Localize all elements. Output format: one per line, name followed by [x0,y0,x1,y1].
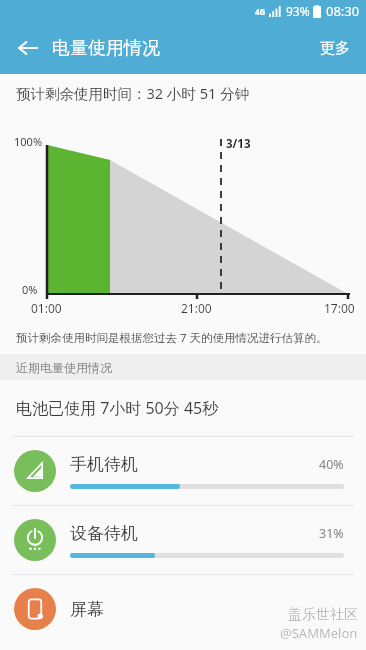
staticText: 17:00 [324,300,355,316]
staticText: 设备待机 [70,523,138,544]
staticText: 0% [22,282,38,297]
staticText: 手机待机 [70,454,138,475]
staticText: 4G [255,6,266,17]
staticText: 31% [319,525,344,542]
staticText: 盖乐世社区 [288,606,358,624]
staticText: @SAMMelon [280,624,358,642]
staticText: 近期电量使用情况 [16,360,112,375]
button[interactable]: Back [8,28,48,68]
staticText: 100% [14,134,43,149]
button[interactable]: 电池已使用 7小时 50分 45秒 [0,380,366,436]
staticText: 21:00 [181,300,212,316]
staticText: 更多 [320,39,350,58]
staticText: 电池已使用 7小时 50分 45秒 [16,397,219,419]
staticText: 3/13 [226,136,251,152]
staticText: 40% [319,456,344,473]
staticText: 屏幕 [70,599,104,620]
staticText: 93% [286,3,310,19]
staticText: 预计剩余使用时间：32 小时 51 分钟 [16,83,249,103]
staticText: 电量使用情况 [52,37,160,60]
button[interactable]: 手机待机 [0,437,366,505]
button[interactable]: 设备待机 [0,506,366,574]
staticText: 预计剩余使用时间是根据您过去 7 天的使用情况进行估算的。 [16,330,328,346]
staticText: 08:30 [326,2,360,20]
button[interactable]: 屏幕 [0,575,366,643]
button[interactable]: 更多 [314,31,356,66]
staticText: 01:00 [31,300,62,316]
